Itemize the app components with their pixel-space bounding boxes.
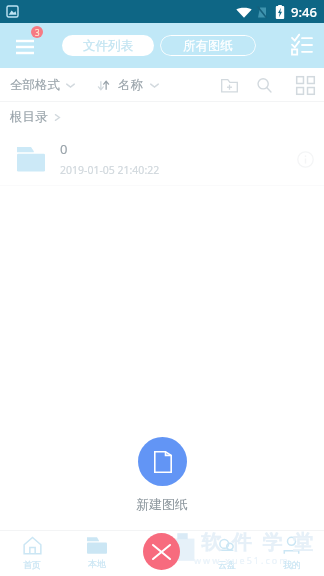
button[interactable]: Grid view (291, 71, 319, 99)
button[interactable]: 本地 (64, 530, 129, 576)
button[interactable]: 名称 (98, 71, 159, 99)
staticText: 0 (60, 140, 68, 158)
staticText: 名称 (118, 77, 143, 93)
button[interactable]: New folder (215, 71, 243, 99)
staticText: 文件列表 (83, 38, 133, 54)
button[interactable]: New drawing (138, 437, 187, 486)
staticText: 软件学堂 (196, 530, 318, 555)
staticText: 新建图纸 (136, 496, 188, 512)
staticText: 全部格式 (10, 77, 60, 93)
button[interactable]: Select items (288, 31, 316, 59)
staticText: 本地 (88, 558, 106, 569)
staticText: 9:46 (291, 3, 317, 21)
button[interactable]: Search (250, 71, 278, 99)
button[interactable]: 云盘 (194, 530, 259, 576)
button[interactable]: 全部格式 (10, 71, 75, 99)
staticText: 3 (35, 27, 40, 38)
staticText: 所有图纸 (183, 38, 233, 54)
staticText: 云盘 (218, 559, 236, 570)
button[interactable]: Close menu (143, 533, 180, 570)
button[interactable]: 我的 (259, 530, 324, 576)
button[interactable]: 首页 (0, 530, 64, 576)
button[interactable]: 0 (0, 132, 324, 185)
staticText: 我的 (283, 559, 301, 570)
staticText: www.xue51.com (194, 554, 290, 566)
button[interactable]: 文件列表 (62, 35, 154, 56)
button[interactable]: 根目录 (10, 103, 61, 131)
staticText: 2019-01-05 21:40:22 (60, 163, 160, 177)
staticText: 首页 (23, 559, 41, 570)
button[interactable]: Menu (6, 27, 44, 65)
button[interactable]: Close (129, 530, 194, 576)
staticText: 根目录 (10, 109, 48, 125)
button[interactable]: 所有图纸 (160, 35, 256, 56)
